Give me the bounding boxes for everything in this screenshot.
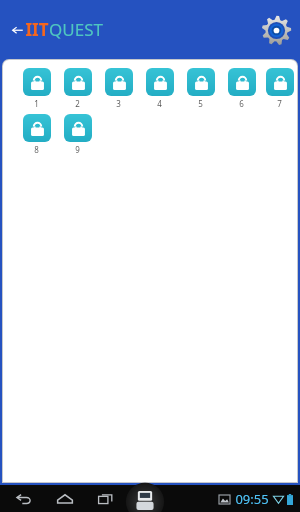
staticText: 8 bbox=[34, 144, 39, 155]
button[interactable]: 2 bbox=[57, 68, 98, 109]
staticText: 9 bbox=[75, 144, 80, 155]
button[interactable]: 9 bbox=[57, 114, 98, 155]
staticText: 09:55 bbox=[235, 490, 269, 508]
button[interactable]: 6 bbox=[221, 68, 262, 109]
button[interactable]: Recent apps bbox=[90, 487, 120, 511]
button[interactable]: 7 bbox=[262, 68, 297, 109]
button[interactable]: Settings bbox=[258, 12, 294, 48]
staticText: 2 bbox=[75, 98, 80, 109]
other: Back bbox=[12, 24, 23, 36]
button[interactable]: 8 bbox=[16, 114, 57, 155]
button[interactable]: 1 bbox=[16, 68, 57, 109]
staticText: 1 bbox=[34, 98, 39, 109]
button[interactable]: Screenshot bbox=[128, 485, 162, 512]
staticText: 5 bbox=[198, 98, 203, 109]
staticText: QUEST bbox=[49, 18, 103, 41]
button[interactable]: 5 bbox=[180, 68, 221, 109]
staticText: 7 bbox=[277, 98, 282, 109]
button[interactable]: Home bbox=[50, 487, 80, 511]
staticText: 3 bbox=[116, 98, 121, 109]
button[interactable]: 4 bbox=[139, 68, 180, 109]
button[interactable]: Back bbox=[8, 487, 38, 511]
staticText: IIT bbox=[25, 18, 49, 41]
staticText: 4 bbox=[157, 98, 162, 109]
button[interactable]: Back bbox=[10, 14, 105, 45]
button[interactable]: 3 bbox=[98, 68, 139, 109]
staticText: 6 bbox=[239, 98, 244, 109]
